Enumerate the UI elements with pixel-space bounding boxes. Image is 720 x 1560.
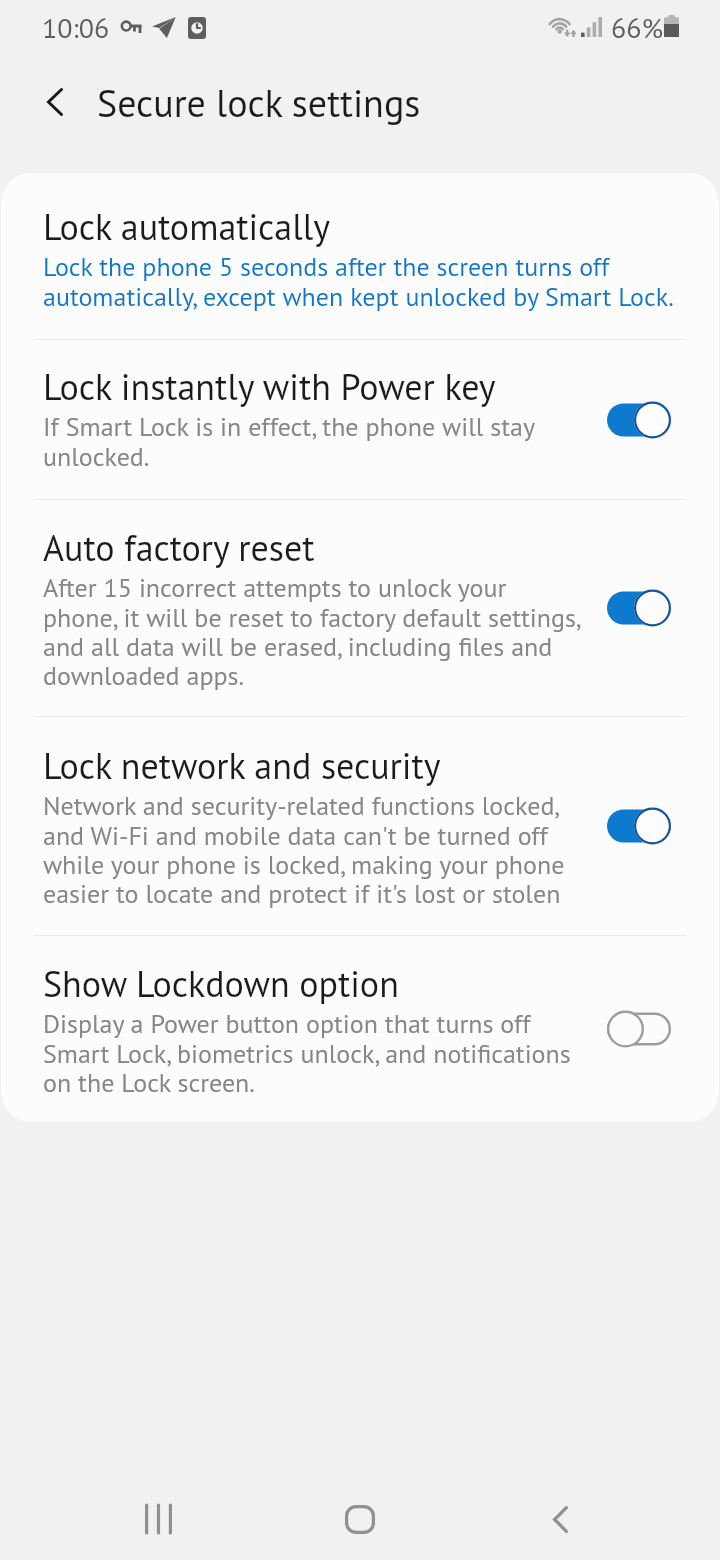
staticText: Lock the phone 5 seconds after the scree… (43, 250, 685, 313)
button[interactable]: Switch on (597, 580, 681, 636)
staticText: Show Lockdown option (43, 960, 399, 1007)
staticText: Lock instantly with Power key (43, 363, 496, 410)
staticText: Lock automatically (43, 203, 330, 250)
staticText: Display a Power button option that turns… (43, 1007, 586, 1099)
button[interactable]: Switch on (597, 392, 681, 448)
staticText: Network and security-related functions l… (43, 789, 586, 910)
button[interactable]: Auto factory reset (1, 500, 719, 716)
button[interactable]: Back (500, 1477, 620, 1560)
staticText: 10:06 (42, 9, 110, 45)
staticText: Lock network and security (43, 742, 441, 789)
button[interactable]: Lock instantly with Power key (1, 340, 719, 499)
button[interactable]: Lock network and security (1, 717, 719, 935)
button[interactable]: Show Lockdown option (1, 936, 719, 1122)
button[interactable]: Switch on (597, 798, 681, 854)
staticText: If Smart Lock is in effect, the phone wi… (43, 410, 586, 473)
button[interactable]: Lock automatically (1, 173, 719, 339)
staticText: 66% (611, 9, 664, 45)
staticText: Auto factory reset (43, 524, 315, 571)
staticText: Secure lock settings (97, 78, 421, 127)
staticText: After 15 incorrect attempts to unlock yo… (43, 571, 586, 692)
button[interactable]: Navigate up (24, 56, 86, 148)
button[interactable]: Home (300, 1477, 420, 1560)
button[interactable]: Recent apps (98, 1477, 218, 1560)
button[interactable]: Switch off (597, 1001, 681, 1057)
